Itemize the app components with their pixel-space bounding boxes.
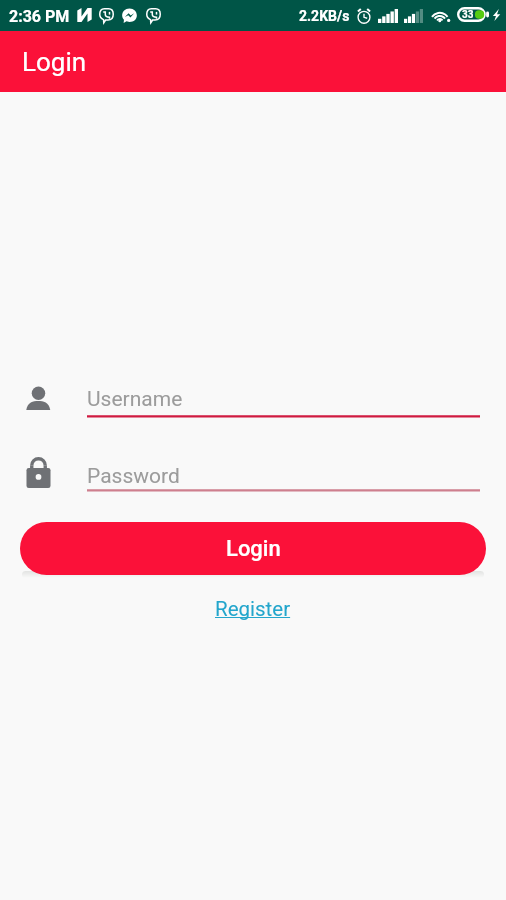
button[interactable]: Login	[20, 522, 486, 575]
button[interactable]: Username field	[16, 378, 490, 422]
staticText: 33	[462, 9, 474, 21]
staticText: Password	[87, 464, 180, 489]
button[interactable]: Register	[215, 597, 291, 621]
staticText: 2:36 PM	[9, 7, 70, 26]
staticText: Login	[226, 536, 281, 562]
button[interactable]: Password field	[16, 452, 490, 496]
staticText: Login	[22, 47, 87, 77]
staticText: 2.2KB/s	[299, 8, 350, 24]
staticText: Username	[87, 387, 183, 412]
